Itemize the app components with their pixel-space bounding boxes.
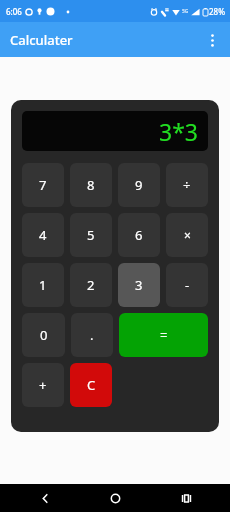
button[interactable]: Recent apps (160, 484, 212, 512)
button[interactable]: 9 (118, 163, 160, 207)
button[interactable]: . (71, 313, 113, 357)
staticText: 7 (39, 176, 47, 194)
button[interactable]: ÷ (166, 163, 208, 207)
staticText: 6 (135, 226, 143, 244)
staticText: ÷ (183, 176, 191, 194)
staticText: 1 (39, 276, 47, 294)
staticText: × (184, 227, 191, 243)
button[interactable]: 3 (118, 263, 160, 307)
button[interactable]: 0 (22, 313, 65, 357)
staticText: 3*3 (159, 116, 198, 147)
staticText: 8 (87, 176, 95, 194)
staticText: Calculater (10, 31, 73, 49)
staticText: C (87, 376, 96, 394)
staticText: 2 (87, 276, 95, 294)
staticText: . (90, 326, 94, 344)
button[interactable]: Home (89, 484, 141, 512)
staticText: 3 (135, 276, 143, 294)
button[interactable]: = (119, 313, 208, 357)
staticText: = (160, 326, 168, 344)
staticText: 28% (209, 6, 225, 17)
staticText: 4 (39, 226, 47, 244)
button[interactable]: More options (197, 25, 227, 55)
staticText: 5G (182, 8, 189, 15)
staticText: 9 (135, 176, 143, 194)
button[interactable]: Back (19, 484, 71, 512)
button[interactable]: + (22, 363, 64, 407)
button[interactable]: 7 (22, 163, 64, 207)
staticText: 5 (87, 226, 95, 244)
staticText: 6:06 (6, 6, 22, 17)
button[interactable]: - (166, 263, 208, 307)
button[interactable]: C (70, 363, 112, 407)
staticText: - (185, 276, 190, 294)
button[interactable]: 1 (22, 263, 64, 307)
button[interactable]: 2 (70, 263, 112, 307)
button[interactable]: 8 (70, 163, 112, 207)
staticText: + (39, 376, 47, 394)
button[interactable]: 6 (118, 213, 160, 257)
staticText: 0 (40, 326, 48, 344)
button[interactable]: × (166, 213, 208, 257)
button[interactable]: 4 (22, 213, 64, 257)
button[interactable]: 5 (70, 213, 112, 257)
